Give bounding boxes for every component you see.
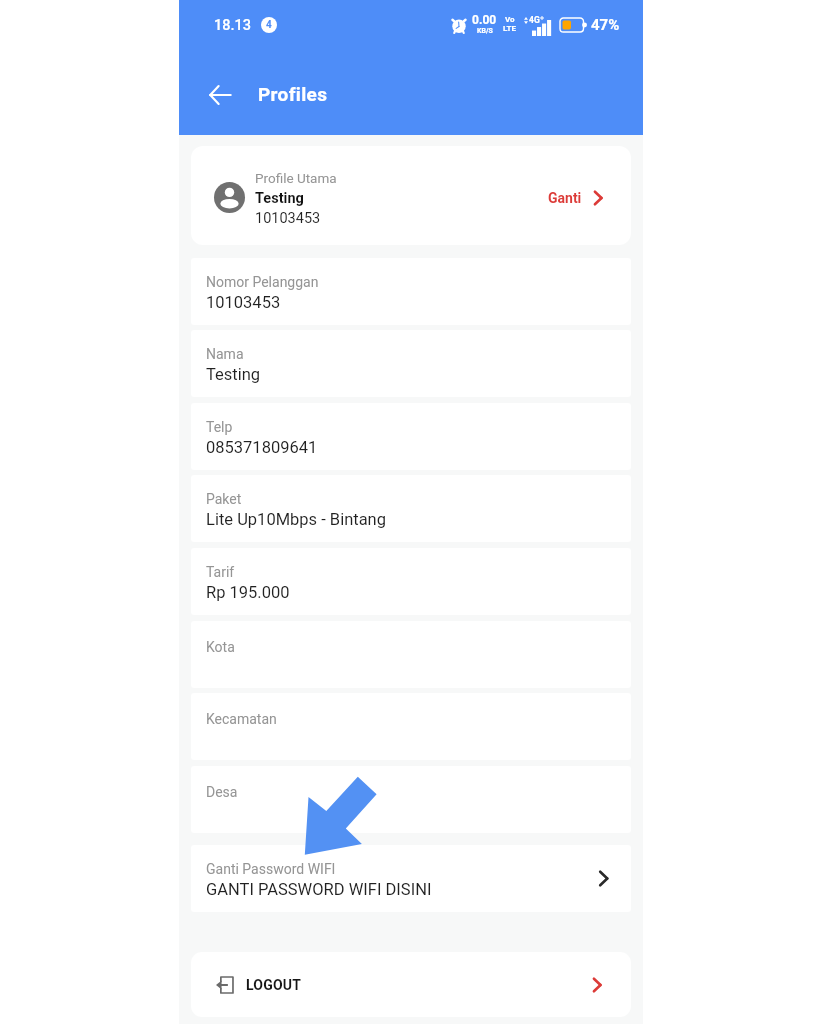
button[interactable]: Ganti — [548, 190, 605, 206]
button[interactable]: Kota — [191, 621, 631, 688]
staticText: 10103453 — [255, 210, 321, 227]
staticText: Testing — [255, 190, 304, 207]
staticText: 085371809641 — [206, 438, 318, 457]
button[interactable]: Desa — [191, 766, 631, 833]
staticText: Nama — [206, 346, 244, 362]
staticText: Lite Up10Mbps - Bintang — [206, 510, 387, 529]
staticText: 47% — [591, 16, 620, 34]
staticText: GANTI PASSWORD WIFI DISINI — [206, 880, 432, 899]
staticText: 10103453 — [206, 293, 281, 312]
staticText: LTE — [503, 24, 516, 33]
staticText: Kota — [206, 639, 235, 655]
staticText: Desa — [206, 784, 238, 800]
staticText: Kecamatan — [206, 711, 277, 727]
staticText: Profile Utama — [255, 170, 337, 186]
button[interactable]: Paket — [191, 475, 631, 542]
staticText: 0.00 — [472, 13, 497, 27]
staticText: LOGOUT — [246, 977, 302, 993]
staticText: Ganti — [548, 190, 582, 206]
staticText: Vo — [505, 15, 515, 24]
staticText: Testing — [206, 365, 261, 384]
other: Battery 47 percent — [560, 18, 587, 32]
staticText: Rp 195.000 — [206, 583, 290, 602]
staticText: Profiles — [258, 83, 328, 105]
staticText: Ganti Password WIFI — [206, 861, 336, 877]
button[interactable]: Ganti Password WIFI — [191, 845, 631, 912]
staticText: 4 — [266, 19, 272, 31]
other: Mobile signal 4G — [524, 14, 552, 36]
button[interactable]: Tarif — [191, 548, 631, 615]
button[interactable]: Kecamatan — [191, 693, 631, 760]
button[interactable]: Profile Utama — [191, 146, 631, 245]
button[interactable]: Telp — [191, 403, 631, 470]
staticText: Tarif — [206, 564, 235, 580]
button[interactable]: Nama — [191, 330, 631, 397]
button[interactable]: Back — [200, 75, 240, 115]
staticText: Nomor Pelanggan — [206, 274, 319, 290]
button[interactable]: Nomor Pelanggan — [191, 258, 631, 325]
staticText: Paket — [206, 491, 242, 507]
staticText: 4G — [529, 15, 540, 25]
other: Alarm — [451, 17, 467, 33]
staticText: 18.13 — [214, 17, 252, 34]
staticText: Telp — [206, 419, 233, 435]
staticText: KB/S — [477, 27, 493, 35]
button[interactable]: LOGOUT — [191, 952, 631, 1017]
